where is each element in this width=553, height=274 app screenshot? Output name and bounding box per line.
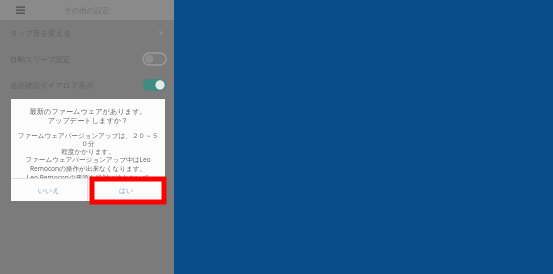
button[interactable]: 送信確認ダイアログ表示 <box>0 72 174 98</box>
staticText: その他の設定 <box>64 6 110 15</box>
staticText: ファームウェアバージョンアップは、２０～５０分 程度かかります。 ファームウェア… <box>15 132 161 178</box>
button[interactable]: はい <box>88 179 165 201</box>
button[interactable]: 自動スリープ設定 <box>0 46 174 72</box>
staticText: 送信確認ダイアログ表示 <box>10 81 94 90</box>
button[interactable]: Menu <box>10 0 30 20</box>
staticText: タップ音を変える <box>10 29 72 38</box>
button[interactable]: いいえ <box>11 179 87 201</box>
staticText: 最新のファームウェアがあります。 アップデートしますか？ <box>29 107 147 125</box>
staticText: いいえ <box>38 186 60 195</box>
staticText: はい <box>119 186 134 195</box>
staticText: 自動スリープ設定 <box>10 55 71 64</box>
